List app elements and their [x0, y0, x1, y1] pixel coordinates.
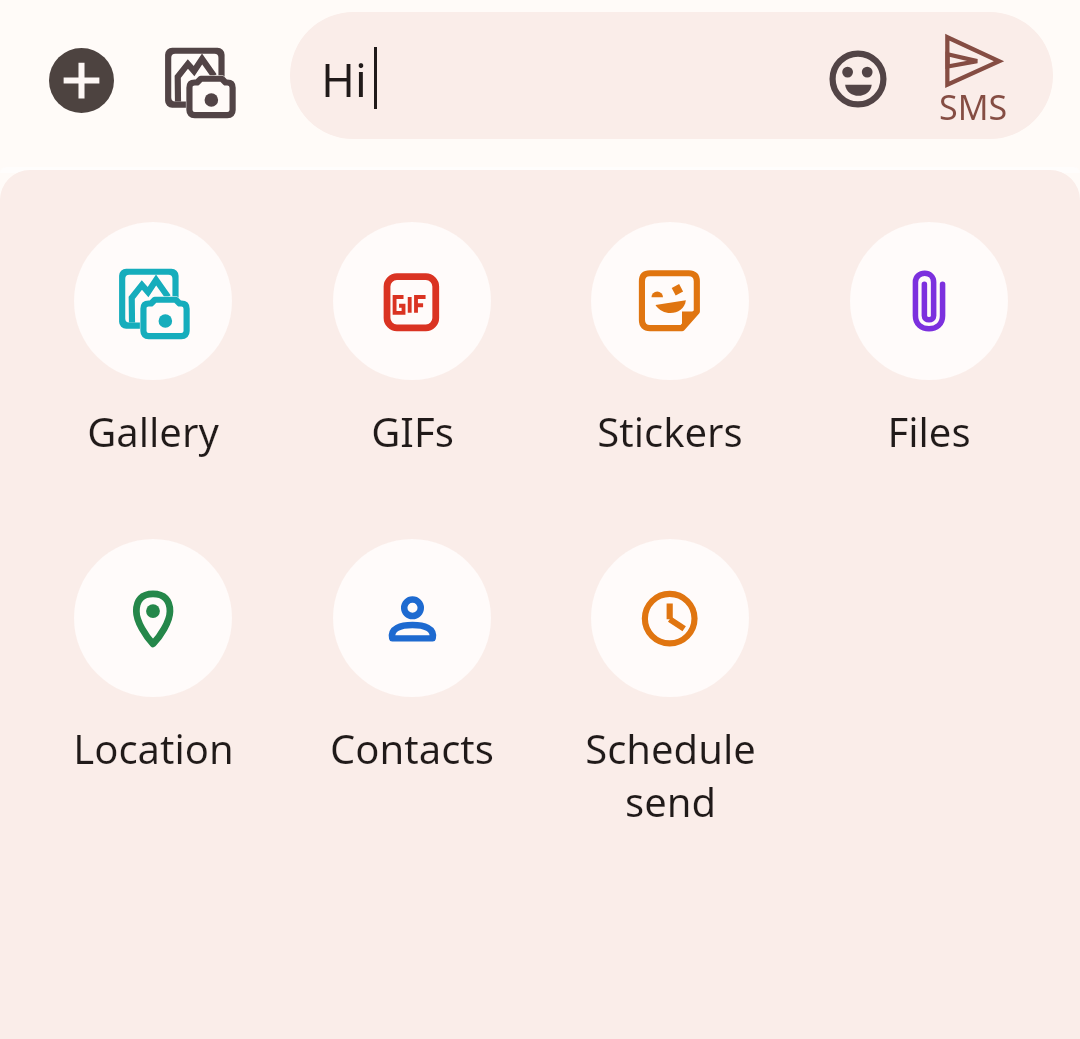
button[interactable]: Schedule send: [540, 539, 800, 828]
button[interactable]: Send SMS: [920, 16, 1024, 140]
button[interactable]: Hi: [290, 12, 1053, 139]
button[interactable]: Stickers: [540, 222, 800, 458]
staticText: Files: [887, 404, 971, 458]
button[interactable]: GIFs: [282, 222, 542, 458]
staticText: Schedule send: [585, 721, 756, 828]
button[interactable]: Files: [799, 222, 1059, 458]
staticText: SMS: [939, 84, 1008, 130]
staticText: Gallery: [87, 404, 219, 458]
button[interactable]: Gallery: [23, 222, 283, 458]
staticText: Location: [73, 721, 234, 775]
staticText: Hi: [321, 48, 367, 111]
button[interactable]: Emoji: [824, 45, 892, 113]
button[interactable]: Gallery: [162, 43, 236, 117]
staticText: Stickers: [597, 404, 743, 458]
staticText: Contacts: [330, 721, 494, 775]
button[interactable]: Location: [23, 539, 283, 775]
button[interactable]: Add attachment: [49, 48, 114, 113]
staticText: GIFs: [371, 404, 454, 458]
button[interactable]: Contacts: [282, 539, 542, 775]
